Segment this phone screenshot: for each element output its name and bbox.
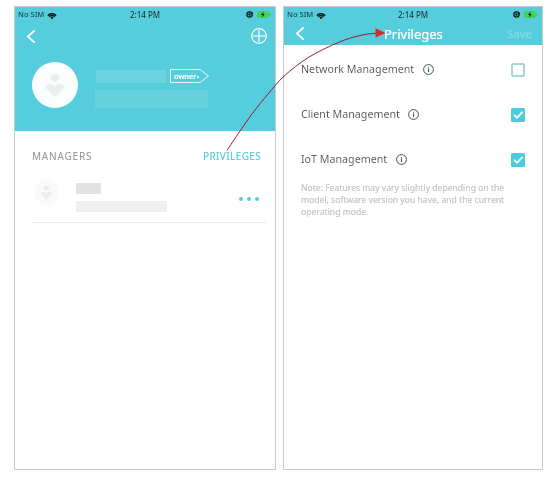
- button[interactable]: [14, 177, 276, 222]
- button[interactable]: Network Management: [283, 47, 543, 92]
- button[interactable]: IoT Management: [283, 137, 543, 182]
- staticText: No SIM: [18, 9, 45, 19]
- button[interactable]: Client Management: [283, 92, 543, 137]
- button[interactable]: Back: [289, 22, 311, 44]
- button[interactable]: Back: [17, 22, 45, 50]
- staticText: IoT Management: [301, 152, 388, 167]
- staticText: Save: [507, 26, 533, 41]
- button[interactable]: PRIVILEGES: [193, 141, 276, 171]
- staticText: 2:14 PM: [130, 9, 161, 20]
- staticText: 2:14 PM: [398, 9, 429, 20]
- staticText: PRIVILEGES: [203, 149, 262, 163]
- staticText: Client Management: [301, 107, 400, 122]
- staticText: MANAGERS: [32, 149, 93, 163]
- button[interactable]: Save: [497, 22, 543, 45]
- staticText: Privileges: [384, 25, 443, 43]
- staticText: No SIM: [287, 9, 314, 19]
- staticText: Note: Features may vary slightly dependi…: [301, 182, 509, 218]
- button[interactable]: Add: [245, 22, 273, 50]
- staticText: owner: [174, 71, 197, 81]
- staticText: Network Management: [301, 62, 415, 77]
